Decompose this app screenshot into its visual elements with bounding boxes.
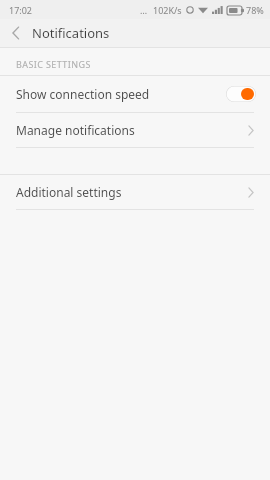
staticText: BASIC SETTINGS [16, 58, 91, 70]
staticText: Notifications [32, 24, 110, 42]
staticText: 102K/s [153, 4, 182, 16]
button[interactable]: Manage notifications [0, 113, 270, 147]
button[interactable]: Additional settings [0, 175, 270, 209]
staticText: 17:02 [9, 4, 33, 16]
button[interactable]: Show connection speed [0, 76, 270, 112]
staticText: Manage notifications [16, 122, 248, 138]
staticText: Additional settings [16, 184, 248, 200]
other: Toggle [226, 86, 256, 102]
staticText: 78% [246, 4, 264, 16]
staticText: … [140, 4, 148, 16]
button[interactable]: Back [0, 19, 32, 47]
staticText: Show connection speed [16, 86, 226, 102]
